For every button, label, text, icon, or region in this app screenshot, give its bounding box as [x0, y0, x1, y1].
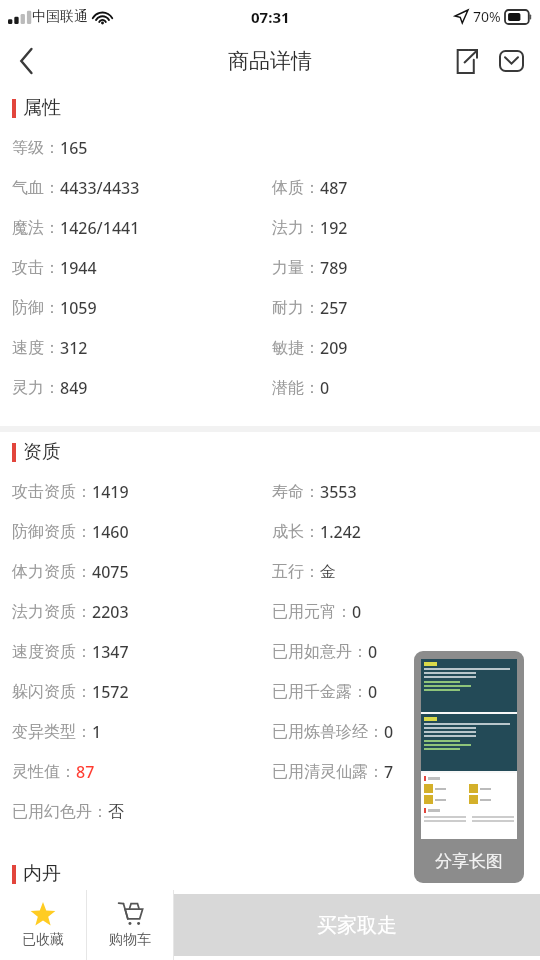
staticText: 1460 — [92, 521, 129, 543]
staticText: 0 — [368, 681, 378, 703]
staticText: 潜能： — [272, 378, 320, 398]
staticText: 已用炼兽珍经： — [272, 722, 384, 742]
staticText: 躲闪资质： — [12, 682, 92, 702]
staticText: 4433/4433 — [60, 177, 140, 199]
staticText: 789 — [320, 257, 348, 279]
staticText: 192 — [320, 217, 348, 239]
button[interactable]: Messages — [488, 38, 534, 84]
staticText: 等级： — [12, 138, 60, 158]
staticText: 1.242 — [320, 521, 361, 543]
staticText: 法力： — [272, 218, 320, 238]
staticText: 1 — [92, 721, 102, 743]
staticText: 成长： — [272, 522, 320, 542]
staticText: 敏捷： — [272, 338, 320, 358]
staticText: 气血： — [12, 178, 60, 198]
staticText: 五行： — [272, 562, 320, 582]
staticText: 金 — [320, 562, 336, 582]
staticText: 70% — [473, 7, 501, 26]
staticText: 2203 — [92, 601, 129, 623]
staticText: 165 — [60, 137, 88, 159]
staticText: 0 — [368, 641, 378, 663]
staticText: 中国联通 — [32, 8, 88, 26]
staticText: 1426/1441 — [60, 217, 140, 239]
staticText: 否 — [108, 802, 124, 822]
staticText: 257 — [320, 297, 348, 319]
staticText: 速度资质： — [12, 642, 92, 662]
staticText: 已用元宵： — [272, 602, 352, 622]
staticText: 已用千金露： — [272, 682, 368, 702]
button[interactable]: 分享长图 — [414, 651, 524, 883]
staticText: 体质： — [272, 178, 320, 198]
staticText: 已用清灵仙露： — [272, 762, 384, 782]
button[interactable]: Share — [442, 38, 488, 84]
staticText: 寿命： — [272, 482, 320, 502]
staticText: 1572 — [92, 681, 129, 703]
staticText: 7 — [384, 761, 394, 783]
staticText: 资质 — [23, 440, 61, 464]
staticText: 4075 — [92, 561, 129, 583]
staticText: 商品详情 — [228, 48, 312, 74]
staticText: 属性 — [23, 96, 61, 120]
staticText: 87 — [76, 761, 95, 783]
staticText: 内丹 — [23, 862, 61, 886]
staticText: 购物车 — [109, 931, 151, 949]
button[interactable]: 买家取走 — [174, 894, 540, 956]
staticText: 487 — [320, 177, 348, 199]
staticText: 分享长图 — [435, 851, 503, 872]
staticText: 1347 — [92, 641, 129, 663]
staticText: 法力资质： — [12, 602, 92, 622]
staticText: 已用幻色丹： — [12, 802, 108, 822]
staticText: 1944 — [60, 257, 97, 279]
staticText: 力量： — [272, 258, 320, 278]
staticText: 209 — [320, 337, 348, 359]
staticText: 攻击资质： — [12, 482, 92, 502]
staticText: 耐力： — [272, 298, 320, 318]
staticText: 买家取走 — [317, 913, 397, 938]
staticText: 变异类型： — [12, 722, 92, 742]
staticText: 0 — [352, 601, 362, 623]
staticText: 灵性值： — [12, 762, 76, 782]
staticText: 防御资质： — [12, 522, 92, 542]
staticText: 已收藏 — [22, 931, 64, 949]
staticText: 防御： — [12, 298, 60, 318]
staticText: 速度： — [12, 338, 60, 358]
button[interactable]: Back — [0, 35, 52, 87]
staticText: 312 — [60, 337, 88, 359]
staticText: 849 — [60, 377, 88, 399]
staticText: 3553 — [320, 481, 357, 503]
staticText: 魔法： — [12, 218, 60, 238]
staticText: 1059 — [60, 297, 97, 319]
staticText: 0 — [384, 721, 394, 743]
staticText: 已用如意丹： — [272, 642, 368, 662]
staticText: 灵力： — [12, 378, 60, 398]
staticText: 0 — [320, 377, 330, 399]
staticText: 体力资质： — [12, 562, 92, 582]
staticText: 1419 — [92, 481, 129, 503]
button[interactable]: 购物车 — [87, 890, 173, 960]
button[interactable]: 已收藏 — [0, 890, 86, 960]
staticText: 07:31 — [251, 7, 290, 27]
staticText: 攻击： — [12, 258, 60, 278]
